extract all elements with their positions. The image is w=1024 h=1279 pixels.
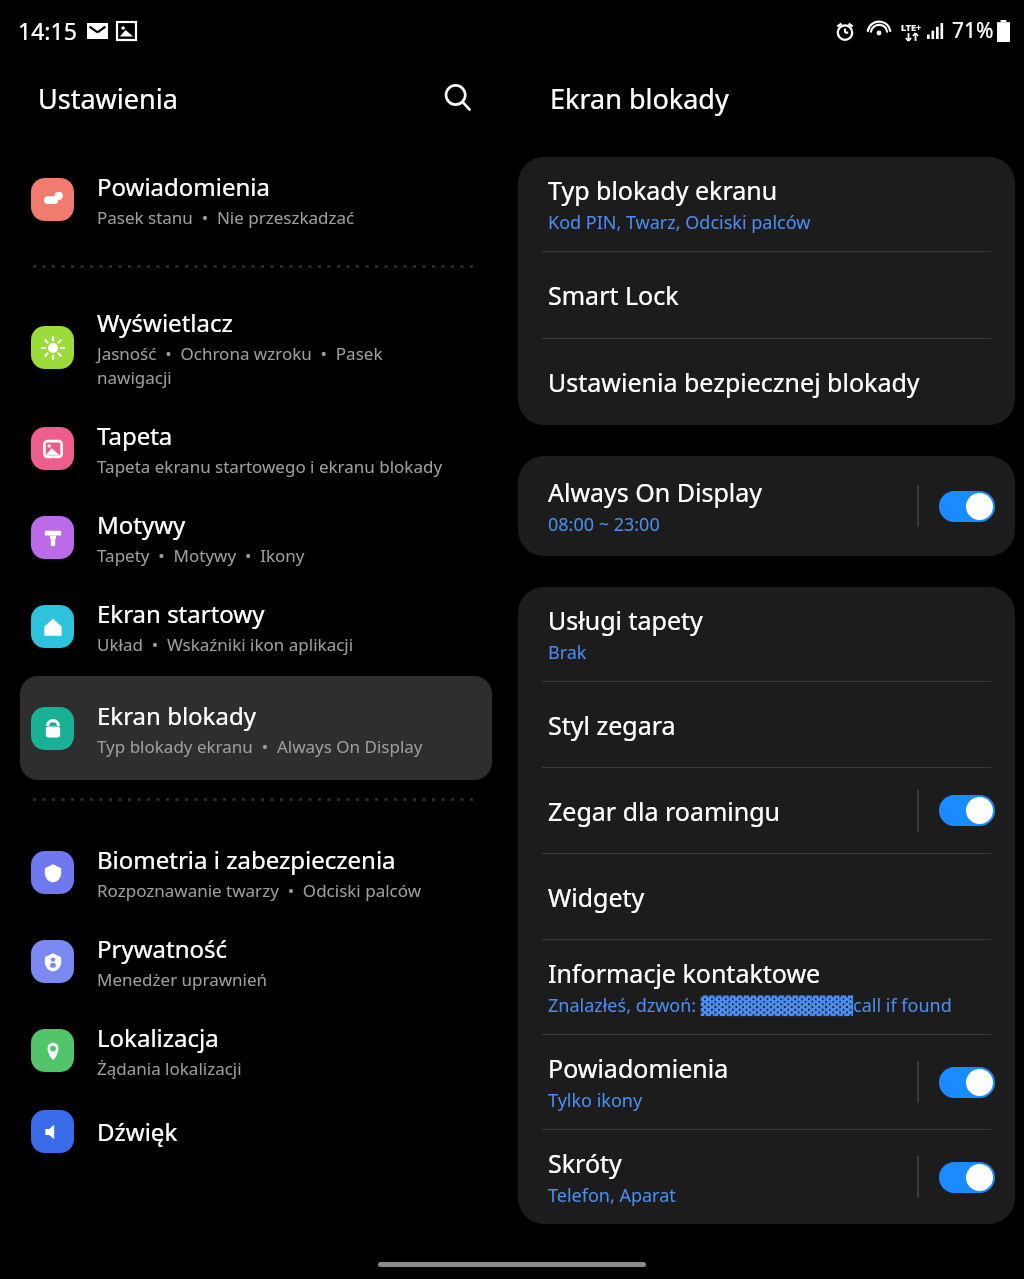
staticText: Tylko ikony bbox=[548, 1088, 643, 1113]
button[interactable]: Dźwięk bbox=[0, 1102, 512, 1161]
staticText: Tapeta bbox=[97, 419, 173, 452]
staticText: Lokalizacja bbox=[97, 1021, 219, 1054]
staticText: Always On Display bbox=[548, 475, 763, 509]
staticText: Powiadomienia bbox=[97, 170, 271, 203]
staticText: Informacje kontaktowe bbox=[548, 956, 821, 990]
staticText: Zegar dla roamingu bbox=[548, 794, 781, 828]
button[interactable]: Typ blokady ekranu bbox=[518, 157, 1015, 251]
button[interactable]: Usługi tapety bbox=[518, 587, 1015, 681]
button[interactable]: Powiadomienia bbox=[0, 162, 512, 237]
staticText: Widgety bbox=[548, 880, 645, 914]
button[interactable]: Toggle Zegar dla roamingu bbox=[919, 768, 1015, 853]
button[interactable]: Lokalizacja bbox=[0, 1013, 512, 1088]
staticText: Ustawienia bezpiecznej blokady bbox=[548, 365, 920, 399]
staticText: Biometria i zabezpieczenia bbox=[97, 843, 396, 876]
staticText: Dźwięk bbox=[97, 1115, 178, 1148]
staticText: 71% bbox=[952, 16, 994, 45]
staticText: Kod PIN, Twarz, Odciski palców bbox=[548, 210, 811, 235]
button[interactable]: Zegar dla roamingu bbox=[518, 768, 917, 853]
staticText: Ekran blokady bbox=[550, 80, 729, 117]
button[interactable]: Ekran startowy bbox=[0, 589, 512, 664]
staticText: Układ • Wskaźniki ikon aplikacji bbox=[97, 633, 354, 656]
button[interactable]: Smart Lock bbox=[518, 252, 1015, 338]
staticText: Rozpoznawanie twarzy • Odciski palców bbox=[97, 879, 422, 902]
staticText: Motywy bbox=[97, 508, 186, 541]
staticText: Jasność • Ochrona wzroku • Pasek nawigac… bbox=[97, 342, 383, 389]
staticText: Menedżer uprawnień bbox=[97, 968, 268, 991]
staticText: Prywatność bbox=[97, 932, 228, 965]
staticText: Tapeta ekranu startowego i ekranu blokad… bbox=[97, 455, 443, 478]
button[interactable]: Skróty bbox=[518, 1130, 917, 1224]
button[interactable]: Toggle Powiadomienia bbox=[919, 1035, 1015, 1129]
staticText: Typ blokady ekranu • Always On Display bbox=[97, 735, 423, 758]
staticText: Skróty bbox=[548, 1146, 622, 1180]
button[interactable]: Ustawienia bezpiecznej blokady bbox=[518, 339, 1015, 425]
staticText: Brak bbox=[548, 640, 587, 665]
button[interactable]: Motywy bbox=[0, 500, 512, 575]
staticText: 14:15 bbox=[18, 15, 77, 46]
staticText: Wyświetlacz bbox=[97, 306, 233, 339]
staticText: Powiadomienia bbox=[548, 1051, 729, 1085]
staticText: Ekran startowy bbox=[97, 597, 265, 630]
staticText: Żądania lokalizacji bbox=[97, 1057, 242, 1080]
staticText: Telefon, Aparat bbox=[548, 1183, 676, 1208]
staticText: Ustawienia bbox=[38, 80, 178, 117]
button[interactable]: Ekran blokady bbox=[20, 676, 492, 780]
button[interactable]: Biometria i zabezpieczenia bbox=[0, 835, 512, 910]
staticText: Styl zegara bbox=[548, 708, 676, 742]
button[interactable]: Tapeta bbox=[0, 411, 512, 486]
button[interactable]: Toggle Skróty bbox=[919, 1130, 1015, 1224]
button[interactable]: Search bbox=[434, 74, 482, 122]
button[interactable]: Wyświetlacz bbox=[0, 298, 512, 397]
button[interactable]: Styl zegara bbox=[518, 682, 1015, 767]
staticText: Smart Lock bbox=[548, 278, 679, 312]
staticText: Usługi tapety bbox=[548, 603, 703, 637]
button[interactable]: Widgety bbox=[518, 854, 1015, 939]
button[interactable]: Prywatność bbox=[0, 924, 512, 999]
staticText: Pasek stanu • Nie przeszkadzać bbox=[97, 206, 355, 229]
button[interactable]: Powiadomienia bbox=[518, 1035, 917, 1129]
button[interactable]: Informacje kontaktowe bbox=[518, 940, 1015, 1034]
staticText: Znalazłeś, dzwoń: ▓▓▓▓▓▓▓▓▓▓▓call if fou… bbox=[548, 993, 952, 1018]
staticText: LTE+ bbox=[901, 21, 922, 33]
staticText: Tapety • Motywy • Ikony bbox=[97, 544, 305, 567]
staticText: Typ blokady ekranu bbox=[548, 173, 778, 207]
button[interactable]: Always On Display bbox=[518, 456, 917, 556]
staticText: 08:00 ~ 23:00 bbox=[548, 512, 660, 537]
staticText: Ekran blokady bbox=[97, 699, 256, 732]
button[interactable]: Toggle Always On Display bbox=[919, 456, 1015, 556]
